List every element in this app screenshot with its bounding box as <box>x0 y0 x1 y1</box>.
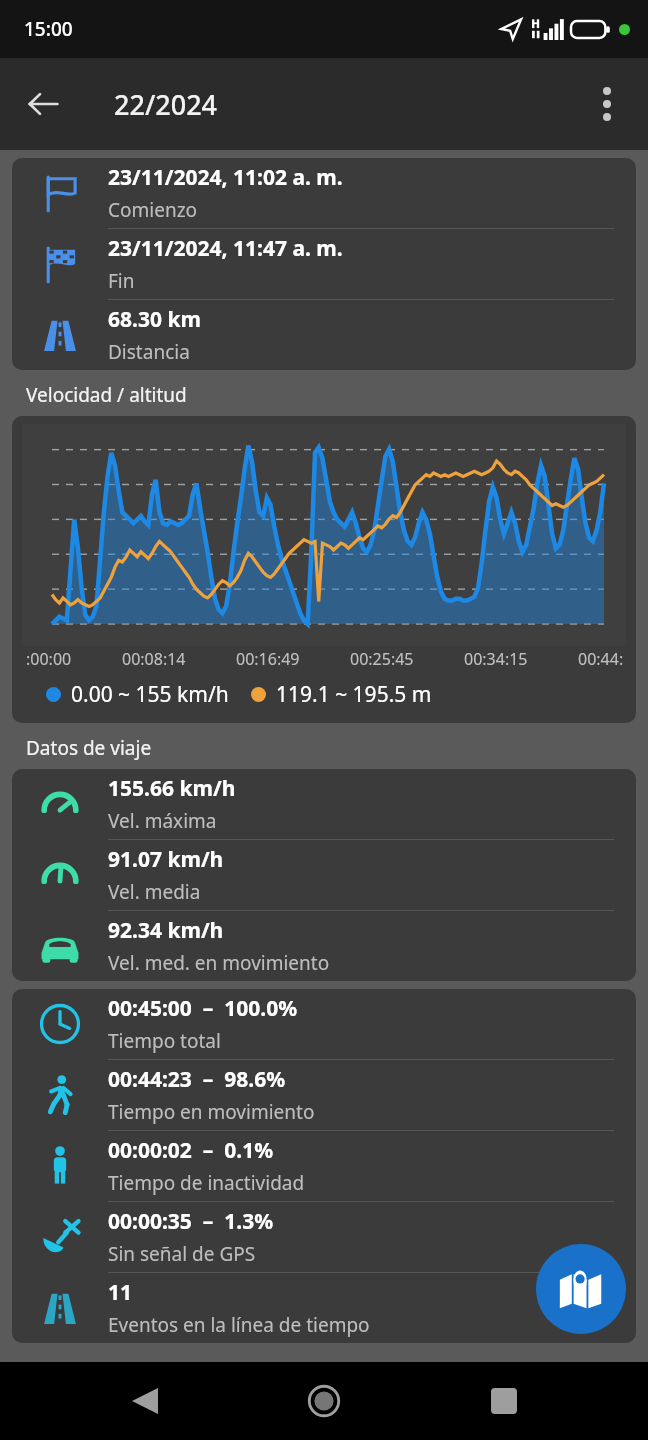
staticText: 23/11/2024, 11:47 a. m. <box>108 234 343 263</box>
button[interactable]: :00:00 <box>12 416 636 723</box>
button[interactable]: 11 <box>12 1273 636 1343</box>
staticText: 23/11/2024, 11:02 a. m. <box>108 163 343 192</box>
button[interactable]: 92.34 km/h <box>12 911 636 981</box>
staticText: Vel. máxima <box>108 808 217 834</box>
staticText: 00:45:00 – 100.0% <box>108 994 298 1023</box>
button[interactable]: 00:45:00 – 100.0% <box>12 989 636 1060</box>
staticText: 00:16:49 <box>236 648 300 670</box>
staticText: Velocidad / altitud <box>26 382 187 408</box>
button[interactable]: 23/11/2024, 11:02 a. m. <box>12 158 636 229</box>
button[interactable]: Back <box>110 1366 180 1436</box>
staticText: Vel. med. en movimiento <box>108 950 330 976</box>
button[interactable]: 155.66 km/h <box>12 769 636 840</box>
staticText: Tiempo en movimiento <box>108 1099 315 1125</box>
staticText: 91.07 km/h <box>108 845 224 874</box>
button[interactable]: Back <box>12 73 74 135</box>
staticText: 68.30 km <box>108 305 201 334</box>
staticText: 0.00 ~ 155 km/h <box>71 680 229 709</box>
staticText: 155.66 km/h <box>108 774 236 803</box>
button[interactable]: 91.07 km/h <box>12 840 636 911</box>
button[interactable]: 68.30 km <box>12 300 636 370</box>
button[interactable]: Home <box>289 1366 359 1436</box>
staticText: 15:00 <box>24 16 73 42</box>
button[interactable]: Show map <box>536 1244 626 1334</box>
button[interactable]: 00:44:23 – 98.6% <box>12 1060 636 1131</box>
button[interactable]: 23/11/2024, 11:47 a. m. <box>12 229 636 300</box>
staticText: 22/2024 <box>114 86 218 123</box>
staticText: 00:08:14 <box>122 648 186 670</box>
staticText: Comienzo <box>108 197 198 223</box>
staticText: Vel. media <box>108 879 201 905</box>
staticText: Datos de viaje <box>26 735 152 761</box>
staticText: 92.34 km/h <box>108 916 224 945</box>
button[interactable]: 00:00:35 – 1.3% <box>12 1202 636 1273</box>
staticText: Tiempo de inactividad <box>108 1170 305 1196</box>
button[interactable]: 00:00:02 – 0.1% <box>12 1131 636 1202</box>
staticText: Distancia <box>108 339 190 365</box>
staticText: 00:34:15 <box>464 648 528 670</box>
staticText: 00:00:35 – 1.3% <box>108 1207 274 1236</box>
staticText: 11 <box>108 1278 133 1307</box>
staticText: 00:00:02 – 0.1% <box>108 1136 274 1165</box>
staticText: Sin señal de GPS <box>108 1241 256 1267</box>
button[interactable]: More options <box>576 73 638 135</box>
staticText: :00:00 <box>26 648 72 670</box>
button[interactable]: Recents <box>469 1366 539 1436</box>
staticText: 00:25:45 <box>350 648 414 670</box>
staticText: 119.1 ~ 195.5 m <box>276 680 432 709</box>
staticText: 00:44:23 – 98.6% <box>108 1065 286 1094</box>
staticText: Tiempo total <box>108 1028 221 1054</box>
staticText: Fin <box>108 268 135 294</box>
staticText: 00:44: <box>578 648 624 670</box>
staticText: Eventos en la línea de tiempo <box>108 1312 370 1338</box>
